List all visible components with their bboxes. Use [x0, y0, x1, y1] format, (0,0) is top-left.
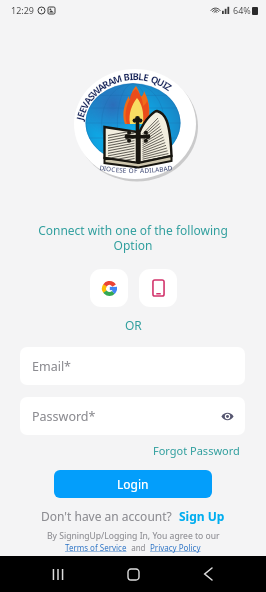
staticText: Login	[117, 476, 149, 492]
button[interactable]: Forgot Password	[151, 441, 242, 460]
button[interactable]: Back	[196, 562, 220, 586]
staticText: By SigningUp/Logging In, You agree to ou…	[47, 530, 220, 542]
staticText: Connect with one of the following Option	[38, 222, 228, 253]
button[interactable]: Privacy Policy	[150, 542, 201, 553]
staticText: 12:29	[11, 4, 35, 16]
staticText: 64%	[233, 4, 251, 16]
button[interactable]	[139, 269, 177, 307]
staticText: Don't have an account?	[41, 508, 172, 524]
button[interactable]: Recents	[46, 562, 70, 586]
staticText: Email*	[32, 358, 71, 375]
staticText: and	[127, 542, 150, 553]
button[interactable]: Email*	[20, 347, 245, 385]
button[interactable]: Sign Up	[179, 508, 225, 524]
staticText: Password*	[32, 408, 96, 425]
button[interactable]: Login	[54, 470, 212, 498]
button[interactable]: Home	[121, 562, 145, 586]
button[interactable]: Show password	[217, 406, 237, 426]
button[interactable]	[90, 269, 128, 307]
button[interactable]: Terms of Service	[65, 542, 127, 553]
button[interactable]: Password*	[20, 397, 245, 435]
staticText: OR	[125, 317, 142, 333]
